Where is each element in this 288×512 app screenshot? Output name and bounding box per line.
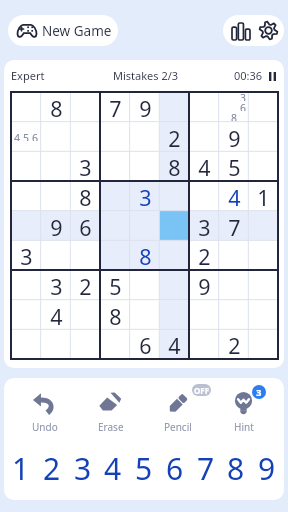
- staticText: 5: [23, 131, 30, 141]
- button[interactable]: 9: [255, 448, 279, 488]
- staticText: 8: [231, 111, 238, 121]
- button[interactable]: 4: [219, 181, 249, 211]
- button[interactable]: 8: [159, 151, 189, 181]
- staticText: 2: [43, 448, 61, 488]
- staticText: 1: [257, 183, 270, 212]
- staticText: 2: [79, 272, 92, 301]
- button[interactable]: 2: [40, 448, 64, 488]
- staticText: 5: [228, 153, 241, 182]
- button[interactable]: Erase: [81, 391, 140, 434]
- staticText: 6: [240, 101, 247, 111]
- button[interactable]: Settings: [253, 15, 284, 46]
- staticText: Hint: [234, 420, 254, 434]
- staticText: 8: [79, 183, 92, 212]
- button[interactable]: 3: [130, 181, 160, 211]
- staticText: 3: [240, 91, 247, 101]
- button[interactable]: Pause: [266, 70, 278, 82]
- staticText: 6: [166, 448, 184, 488]
- button[interactable]: 4: [159, 329, 189, 359]
- staticText: 6: [32, 131, 39, 141]
- button[interactable]: 6: [130, 329, 160, 359]
- button[interactable]: 9: [41, 211, 71, 241]
- button[interactable]: 7: [194, 448, 218, 488]
- staticText: Expert: [11, 68, 45, 83]
- staticText: 3: [74, 448, 92, 488]
- button[interactable]: OFF: [148, 391, 207, 434]
- staticText: 8: [168, 153, 181, 182]
- staticText: 4: [168, 331, 181, 360]
- staticText: 2: [168, 124, 181, 153]
- button[interactable]: 3: [41, 270, 71, 300]
- staticText: 9: [198, 272, 211, 301]
- staticText: 9: [139, 94, 152, 123]
- staticText: 6: [139, 331, 152, 360]
- staticText: 8: [139, 242, 152, 271]
- staticText: 5: [135, 448, 153, 488]
- button[interactable]: 3: [214, 391, 273, 434]
- button[interactable]: New Game: [8, 15, 118, 46]
- staticText: 3: [256, 386, 262, 399]
- staticText: 4: [228, 183, 241, 212]
- button[interactable]: 3: [11, 240, 41, 270]
- staticText: 3: [139, 183, 152, 212]
- staticText: 1: [12, 448, 30, 488]
- staticText: 7: [109, 94, 122, 123]
- staticText: 4: [104, 448, 122, 488]
- button[interactable]: 3: [70, 151, 100, 181]
- button[interactable]: 9: [219, 122, 249, 152]
- button[interactable]: 6: [163, 448, 187, 488]
- button[interactable]: 5: [219, 151, 249, 181]
- button[interactable]: 8: [70, 181, 100, 211]
- button[interactable]: 8: [100, 300, 130, 330]
- staticText: 4: [14, 131, 21, 141]
- button[interactable]: 3: [71, 448, 95, 488]
- button[interactable]: 8: [224, 448, 248, 488]
- staticText: 6: [79, 213, 92, 242]
- button[interactable]: 8: [41, 92, 71, 122]
- staticText: 3: [198, 213, 211, 242]
- staticText: 7: [197, 448, 215, 488]
- button[interactable]: 3: [219, 92, 249, 122]
- staticText: 00:36: [234, 68, 263, 83]
- staticText: 2: [198, 242, 211, 271]
- staticText: 9: [228, 124, 241, 153]
- button[interactable]: 7: [219, 211, 249, 241]
- button[interactable]: 4: [189, 151, 219, 181]
- staticText: 9: [50, 213, 63, 242]
- button[interactable]: 4: [41, 300, 71, 330]
- staticText: 7: [228, 213, 241, 242]
- staticText: Mistakes 2/3: [113, 68, 179, 83]
- staticText: Undo: [32, 420, 58, 434]
- button[interactable]: Undo: [15, 391, 74, 434]
- staticText: New Game: [42, 22, 112, 40]
- button[interactable]: Statistics: [223, 15, 253, 46]
- staticText: Erase: [98, 420, 124, 434]
- staticText: 9: [258, 448, 276, 488]
- button[interactable]: 9: [189, 270, 219, 300]
- staticText: 2: [228, 331, 241, 360]
- staticText: 8: [109, 302, 122, 331]
- button[interactable]: 2: [219, 329, 249, 359]
- button[interactable]: 1: [248, 181, 278, 211]
- button[interactable]: 5: [132, 448, 156, 488]
- button[interactable]: 4: [101, 448, 125, 488]
- button[interactable]: 3: [189, 211, 219, 241]
- button[interactable]: 9: [130, 92, 160, 122]
- staticText: 3: [20, 242, 33, 271]
- button[interactable]: 2: [159, 122, 189, 152]
- staticText: 8: [50, 94, 63, 123]
- staticText: 4: [50, 302, 63, 331]
- button[interactable]: 2: [189, 240, 219, 270]
- button[interactable]: 2: [70, 270, 100, 300]
- staticText: Pencil: [164, 420, 192, 434]
- button[interactable]: 8: [130, 240, 160, 270]
- staticText: 5: [109, 272, 122, 301]
- button[interactable]: 4: [11, 122, 41, 152]
- staticText: 8: [227, 448, 245, 488]
- button[interactable]: 1: [9, 448, 33, 488]
- staticText: 3: [50, 272, 63, 301]
- button[interactable]: 7: [100, 92, 130, 122]
- staticText: OFF: [194, 385, 210, 396]
- button[interactable]: 6: [70, 211, 100, 241]
- button[interactable]: 5: [100, 270, 130, 300]
